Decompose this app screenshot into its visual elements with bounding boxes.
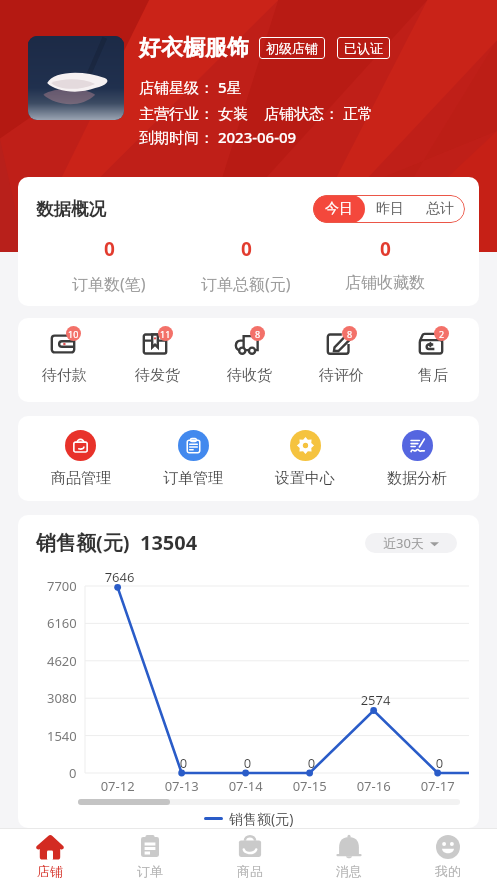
staticText: 昨日 bbox=[376, 200, 404, 218]
button[interactable]: 商品管理 bbox=[24, 430, 137, 488]
staticText: 到期时间： 2023-06-09 bbox=[139, 127, 297, 147]
button[interactable]: 11 bbox=[111, 326, 203, 385]
button[interactable]: 今日 bbox=[313, 195, 365, 223]
button[interactable]: 10 bbox=[18, 326, 111, 385]
button[interactable]: 8 bbox=[203, 326, 295, 385]
staticText: 待评价 bbox=[319, 366, 364, 385]
staticText: 8 bbox=[255, 328, 261, 340]
button[interactable]: 店铺 bbox=[0, 829, 100, 883]
button[interactable]: 2 bbox=[387, 326, 479, 385]
button[interactable]: 总计 bbox=[415, 195, 465, 223]
staticText: 0 bbox=[241, 236, 252, 262]
staticText: 店铺状态： 正常 bbox=[264, 103, 373, 123]
staticText: 11 bbox=[160, 328, 171, 340]
button[interactable]: 设置中心 bbox=[249, 430, 361, 488]
staticText: 0 bbox=[380, 236, 391, 262]
staticText: 设置中心 bbox=[275, 469, 335, 488]
staticText: 8 bbox=[347, 328, 353, 340]
staticText: 订单 bbox=[137, 863, 163, 879]
staticText: 10 bbox=[68, 328, 79, 340]
staticText: 已认证 bbox=[344, 40, 383, 56]
staticText: 总计 bbox=[426, 200, 454, 218]
staticText: 店铺星级： 5星 bbox=[139, 77, 242, 97]
staticText: 待付款 bbox=[42, 366, 87, 385]
staticText: 初级店铺 bbox=[266, 40, 318, 56]
staticText: 商品 bbox=[237, 863, 263, 879]
staticText: 店铺收藏数 bbox=[345, 273, 425, 293]
button[interactable]: 已认证 bbox=[337, 37, 390, 59]
button[interactable]: 8 bbox=[295, 326, 387, 385]
staticText: 订单数(笔) bbox=[72, 273, 146, 295]
staticText: 待发货 bbox=[135, 366, 180, 385]
staticText: 售后 bbox=[418, 366, 448, 385]
button[interactable]: 订单管理 bbox=[137, 430, 249, 488]
button[interactable]: 消息 bbox=[299, 829, 398, 883]
staticText: 订单管理 bbox=[163, 469, 223, 488]
staticText: 消息 bbox=[336, 863, 362, 879]
staticText: 数据分析 bbox=[387, 469, 447, 488]
staticText: 好衣橱服饰 bbox=[139, 34, 249, 62]
staticText: 今日 bbox=[325, 200, 353, 218]
button[interactable]: 商品 bbox=[200, 829, 299, 883]
staticText: 销售额(元) 13504 bbox=[36, 529, 198, 556]
button[interactable]: 初级店铺 bbox=[259, 37, 325, 59]
staticText: 订单总额(元) bbox=[201, 273, 291, 295]
button[interactable]: 数据分析 bbox=[361, 430, 473, 488]
staticText: 近30天 bbox=[383, 534, 424, 552]
staticText: 店铺 bbox=[37, 863, 63, 879]
staticText: 0 bbox=[104, 236, 115, 262]
staticText: 待收货 bbox=[227, 366, 272, 385]
staticText: 数据概况 bbox=[36, 198, 106, 220]
staticText: 主营行业： 女装 bbox=[139, 103, 248, 123]
staticText: 我的 bbox=[435, 863, 461, 879]
button[interactable]: 我的 bbox=[398, 829, 497, 883]
staticText: 2 bbox=[439, 328, 445, 340]
button[interactable]: 昨日 bbox=[365, 195, 415, 223]
button[interactable]: 近30天 bbox=[365, 533, 457, 553]
staticText: 销售额(元) bbox=[229, 809, 294, 828]
staticText: 商品管理 bbox=[51, 469, 111, 488]
button[interactable]: 订单 bbox=[100, 829, 200, 883]
